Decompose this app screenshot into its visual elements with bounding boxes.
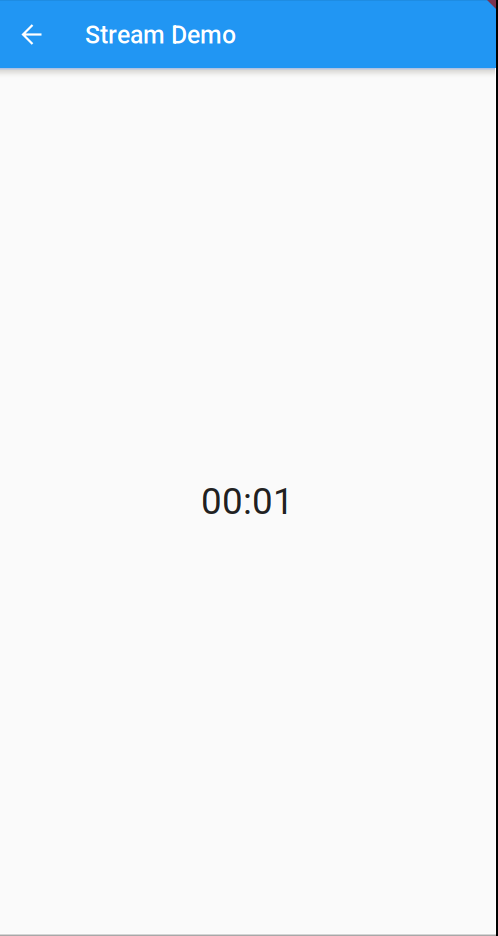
button[interactable]: Back [0, 0, 64, 68]
staticText: Stream Demo [85, 20, 236, 49]
staticText: 00:01 [201, 480, 294, 523]
